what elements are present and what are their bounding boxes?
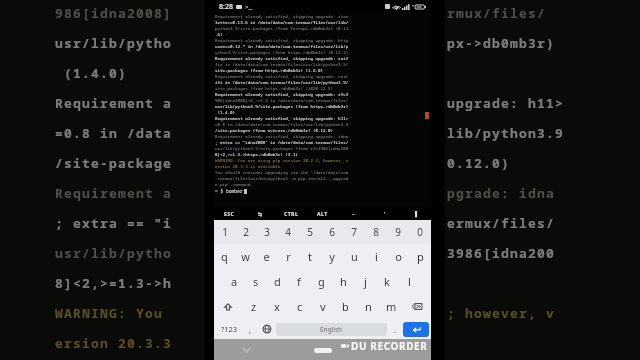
staticText: l bbox=[408, 274, 411, 289]
button[interactable]: ↹ bbox=[245, 207, 276, 220]
button[interactable]: h bbox=[332, 269, 354, 294]
button[interactable]: 6 bbox=[321, 220, 343, 244]
staticText: lette==0.13.6 in /data/data/com.termux/f… bbox=[215, 20, 349, 26]
staticText: lib/python3.9 bbox=[447, 124, 565, 142]
staticText: q bbox=[221, 249, 228, 264]
button[interactable]: 4 bbox=[277, 220, 299, 244]
button[interactable]: o bbox=[387, 244, 409, 269]
button[interactable]: k bbox=[376, 269, 398, 294]
button[interactable]: Enter bbox=[403, 322, 429, 337]
staticText: site-packages (from httpx->db0mb3r) (1.2… bbox=[215, 68, 324, 74]
button[interactable]: r bbox=[277, 244, 299, 269]
staticText: Requirement already satisfied, skipping … bbox=[215, 92, 349, 98]
button[interactable]: j bbox=[354, 269, 376, 294]
staticText: Requirement already satisfied, skipping … bbox=[215, 134, 349, 140]
staticText: ALT bbox=[317, 210, 328, 217]
button[interactable]: ALT bbox=[307, 207, 338, 220]
staticText: ersion 20.3.3 bbox=[55, 334, 173, 352]
button[interactable]: – bbox=[338, 207, 369, 220]
button[interactable]: g bbox=[310, 269, 332, 294]
staticText: ‘ bbox=[384, 210, 386, 217]
staticText: pgrade: idna bbox=[447, 184, 556, 202]
button[interactable]: 2 bbox=[235, 220, 256, 244]
staticText: a bbox=[231, 274, 238, 289]
button[interactable]: m bbox=[380, 294, 403, 319]
button[interactable]: i bbox=[365, 244, 387, 269]
button[interactable]: w bbox=[235, 244, 256, 269]
button[interactable]: x bbox=[265, 294, 288, 319]
button[interactable]: ▐ bbox=[400, 207, 431, 220]
button[interactable]: ‘ bbox=[369, 207, 400, 220]
button[interactable]: z bbox=[242, 294, 265, 319]
staticText: 986[idna2008] bbox=[55, 4, 173, 22]
button[interactable]: CTRL bbox=[276, 207, 307, 220]
button[interactable]: f bbox=[288, 269, 310, 294]
staticText: o bbox=[395, 249, 402, 264]
button[interactable]: n bbox=[357, 294, 380, 319]
button[interactable]: . bbox=[387, 319, 403, 339]
button[interactable]: y bbox=[321, 244, 343, 269]
button[interactable]: ?123 bbox=[216, 319, 242, 339]
staticText: WARNING: You are using pip version 20.2.… bbox=[215, 158, 349, 164]
staticText: 1 bbox=[222, 225, 228, 239]
staticText: .6) bbox=[215, 32, 223, 38]
button[interactable]: p bbox=[409, 244, 431, 269]
button[interactable]: 8 bbox=[365, 220, 387, 244]
staticText: , bbox=[249, 324, 252, 335]
staticText: 6 bbox=[329, 225, 335, 239]
staticText: w bbox=[241, 249, 250, 264]
button[interactable]: 5 bbox=[299, 220, 321, 244]
staticText: .termux/files/usr/bin/python3 -m pip ins… bbox=[215, 176, 349, 182]
button[interactable]: Hide keyboard bbox=[239, 343, 253, 357]
button[interactable]: 3 bbox=[256, 220, 277, 244]
button[interactable]: 0 bbox=[409, 220, 431, 244]
staticText: p bbox=[417, 249, 424, 264]
button[interactable]: q bbox=[214, 244, 235, 269]
button[interactable]: u bbox=[343, 244, 365, 269]
staticText: i bbox=[375, 249, 378, 264]
button[interactable]: , bbox=[242, 319, 258, 339]
button[interactable]: Change language bbox=[258, 319, 276, 339]
button[interactable]: b bbox=[334, 294, 357, 319]
staticText: 3 bbox=[264, 225, 270, 239]
staticText: y bbox=[329, 249, 335, 264]
button[interactable]: Backspace bbox=[403, 294, 431, 319]
button[interactable]: l bbox=[398, 269, 420, 294]
staticText: x bbox=[274, 299, 280, 314]
button[interactable]: a bbox=[224, 269, 245, 294]
staticText: d bbox=[274, 274, 281, 289]
staticText: (1.4.0) bbox=[55, 64, 128, 82]
staticText: g bbox=[318, 274, 325, 289]
staticText: /site-packages (from uvicorn->db0mb3r) (… bbox=[215, 128, 334, 134]
button[interactable]: v bbox=[311, 294, 334, 319]
button[interactable]: English bbox=[276, 323, 387, 336]
staticText: 4 bbox=[285, 225, 291, 239]
staticText: site-packages (from httpx->db0mb3r) (202… bbox=[215, 86, 334, 92]
staticText: 986[idna2008]<2,>=1.3 in /data/data/com.… bbox=[215, 98, 349, 104]
button[interactable]: 9 bbox=[387, 220, 409, 244]
staticText: n bbox=[365, 299, 372, 314]
button[interactable]: Home bbox=[314, 348, 332, 353]
button[interactable]: c bbox=[288, 294, 311, 319]
staticText: ermux/files/ bbox=[447, 214, 556, 232]
staticText: python3.9/site-packages (from fastapi->d… bbox=[215, 26, 349, 32]
button[interactable]: s bbox=[245, 269, 266, 294]
button[interactable]: t bbox=[299, 244, 321, 269]
button[interactable]: Shift bbox=[214, 294, 242, 319]
staticText: ?123 bbox=[221, 324, 238, 334]
staticText: px->db0mb3r) bbox=[447, 34, 556, 52]
staticText: z bbox=[251, 299, 257, 314]
button[interactable]: e bbox=[256, 244, 277, 269]
staticText: c bbox=[297, 299, 303, 314]
staticText: You should consider upgrading via the '/… bbox=[215, 170, 349, 176]
staticText: CTRL bbox=[284, 210, 299, 217]
staticText: 0 bbox=[417, 225, 423, 239]
button[interactable]: d bbox=[266, 269, 288, 294]
button[interactable]: 7 bbox=[343, 220, 365, 244]
staticText: (1.4.0) bbox=[215, 110, 236, 116]
staticText: core==0.12.* in /data/data/com.termux/fi… bbox=[215, 44, 349, 50]
button[interactable]: 1 bbox=[214, 220, 235, 244]
staticText: 8]<2,>=1.3->h bbox=[55, 274, 173, 292]
staticText: t bbox=[308, 249, 312, 264]
button[interactable]: ESC bbox=[214, 207, 245, 220]
